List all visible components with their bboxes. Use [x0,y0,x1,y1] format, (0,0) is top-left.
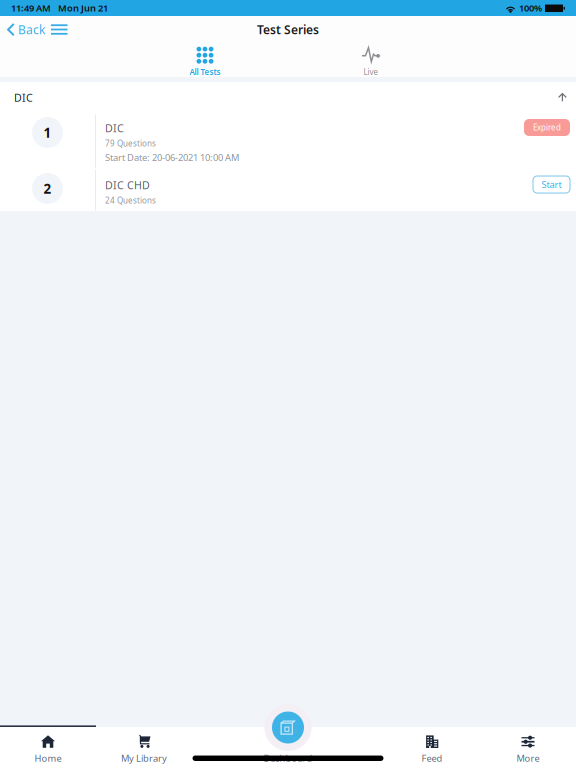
button[interactable]: Collapse [552,87,573,108]
staticText: 11:49 AM [11,2,51,14]
staticText: Start [541,178,561,191]
button[interactable]: Menu [46,16,72,43]
staticText: Dashboard [263,752,312,764]
staticText: 1 [43,124,51,141]
button[interactable]: Feed [384,727,480,768]
button[interactable]: All Tests [155,43,255,77]
button[interactable]: Back [0,16,46,43]
staticText: DIC [14,90,33,105]
staticText: All Tests [189,67,220,77]
staticText: 24 Questions [105,195,156,206]
staticText: Feed [421,752,442,764]
staticText: Test Series [257,21,319,37]
staticText: Back [18,21,45,37]
staticText: Live [363,67,378,77]
button[interactable]: 2 [0,169,576,211]
button[interactable]: Dashboard [264,704,311,751]
button[interactable]: 1 [0,113,576,169]
staticText: Expired [533,122,561,133]
staticText: DIC [105,121,124,135]
button[interactable]: Live [321,43,421,77]
button[interactable]: Dashboard [192,727,384,768]
staticText: Mon Jun 21 [58,2,108,14]
staticText: DIC CHD [105,178,150,192]
button[interactable]: Home [0,727,96,768]
staticText: 2 [43,180,51,197]
staticText: Home [34,752,61,764]
button[interactable]: More [480,727,576,768]
button[interactable]: My Library [96,727,192,768]
staticText: 79 Questions [105,138,156,149]
staticText: More [516,752,539,764]
staticText: Start Date: 20-06-2021 10:00 AM [105,151,239,164]
staticText: 100% [519,2,542,14]
staticText: My Library [121,752,167,764]
